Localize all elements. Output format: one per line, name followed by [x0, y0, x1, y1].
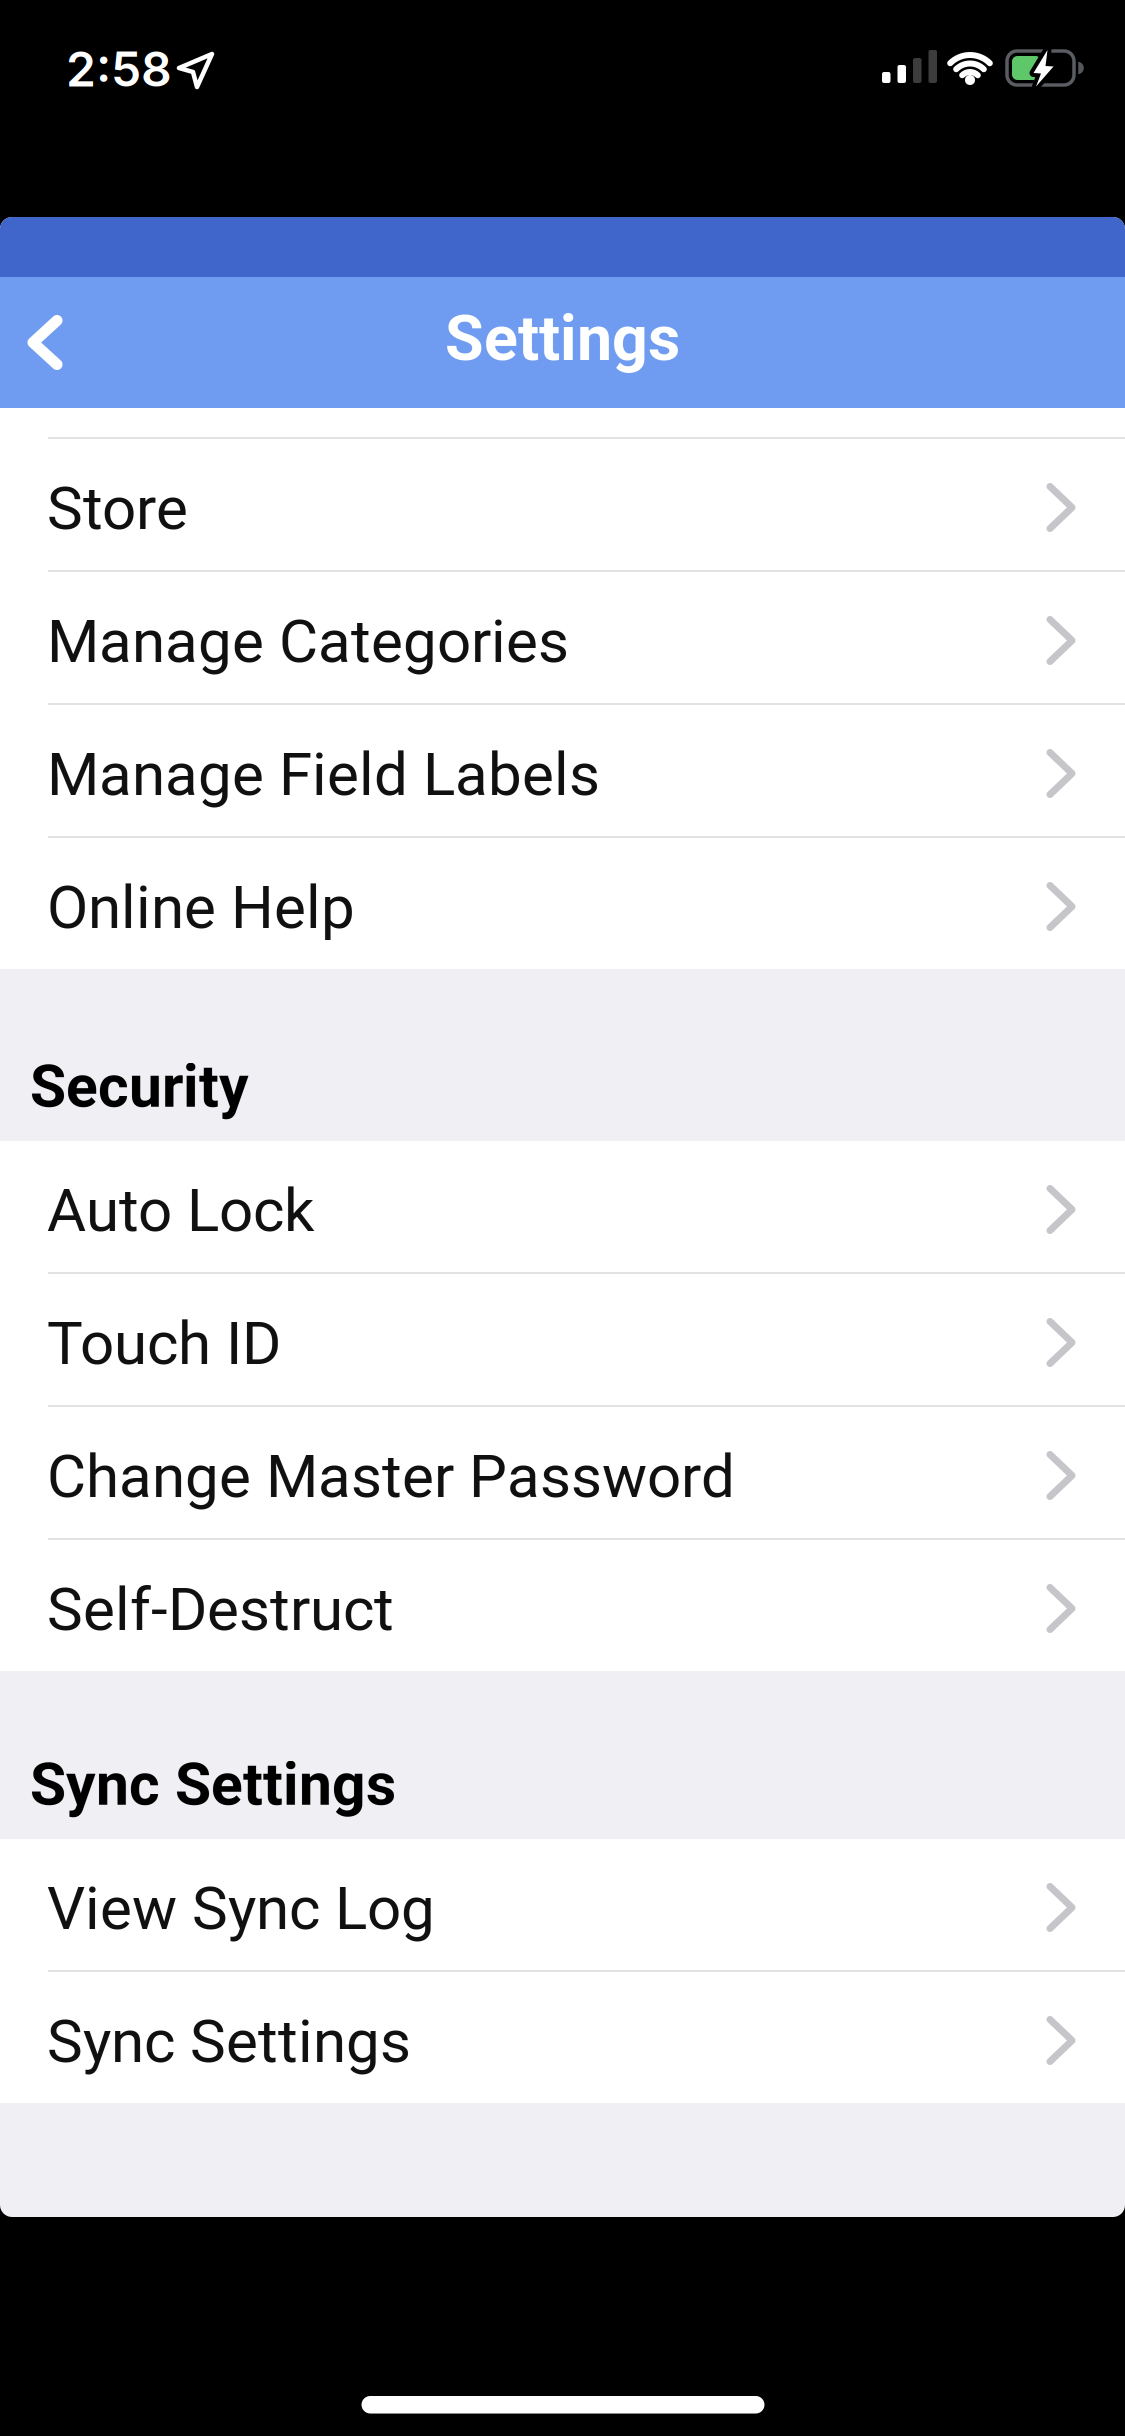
staticText: 2:58 — [66, 40, 172, 98]
button[interactable]: Change Master Password — [0, 1407, 1125, 1538]
staticText: Security — [30, 1052, 249, 1121]
staticText: Sync Settings — [30, 1750, 396, 1819]
staticText: Self-Destruct — [47, 1574, 394, 1645]
button[interactable]: Online Help — [0, 838, 1125, 969]
button[interactable]: Store — [0, 439, 1125, 570]
button[interactable]: Manage Field Labels — [0, 705, 1125, 836]
staticText: Change Master Password — [47, 1441, 735, 1512]
button[interactable]: Back — [0, 312, 70, 372]
staticText: Sync Settings — [47, 2006, 411, 2077]
staticText: Store — [47, 473, 188, 544]
staticText: Auto Lock — [47, 1175, 314, 1246]
button[interactable]: Manage Categories — [0, 572, 1125, 703]
button[interactable]: Self-Destruct — [0, 1540, 1125, 1671]
staticText: Manage Field Labels — [47, 739, 600, 810]
staticText: Manage Categories — [47, 606, 569, 677]
button[interactable]: Sync Settings — [0, 1972, 1125, 2103]
button[interactable]: Auto Lock — [0, 1141, 1125, 1272]
staticText: View Sync Log — [47, 1873, 435, 1944]
staticText: Settings — [445, 302, 680, 375]
button[interactable]: Touch ID — [0, 1274, 1125, 1405]
button[interactable]: View Sync Log — [0, 1839, 1125, 1970]
staticText: Touch ID — [47, 1308, 281, 1379]
staticText: Online Help — [47, 872, 355, 943]
